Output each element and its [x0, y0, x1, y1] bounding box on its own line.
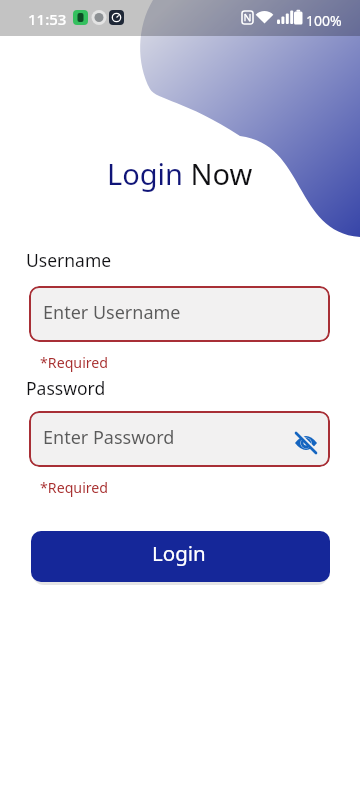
button[interactable]: Enter Password: [29, 411, 330, 467]
button[interactable]: [294, 431, 318, 455]
staticText: *Required: [40, 478, 109, 497]
staticText: Now: [183, 154, 253, 193]
staticText: *Required: [40, 353, 109, 372]
staticText: Username: [26, 248, 112, 272]
staticText: 100%: [306, 11, 342, 30]
staticText: Enter Username: [43, 300, 181, 325]
staticText: Password: [26, 376, 106, 400]
staticText: Login: [107, 154, 183, 193]
staticText: Login: [152, 539, 206, 567]
button[interactable]: Login: [31, 531, 330, 582]
staticText: Enter Password: [43, 425, 175, 450]
button[interactable]: Enter Username: [29, 286, 330, 342]
staticText: 11:53: [28, 9, 67, 29]
